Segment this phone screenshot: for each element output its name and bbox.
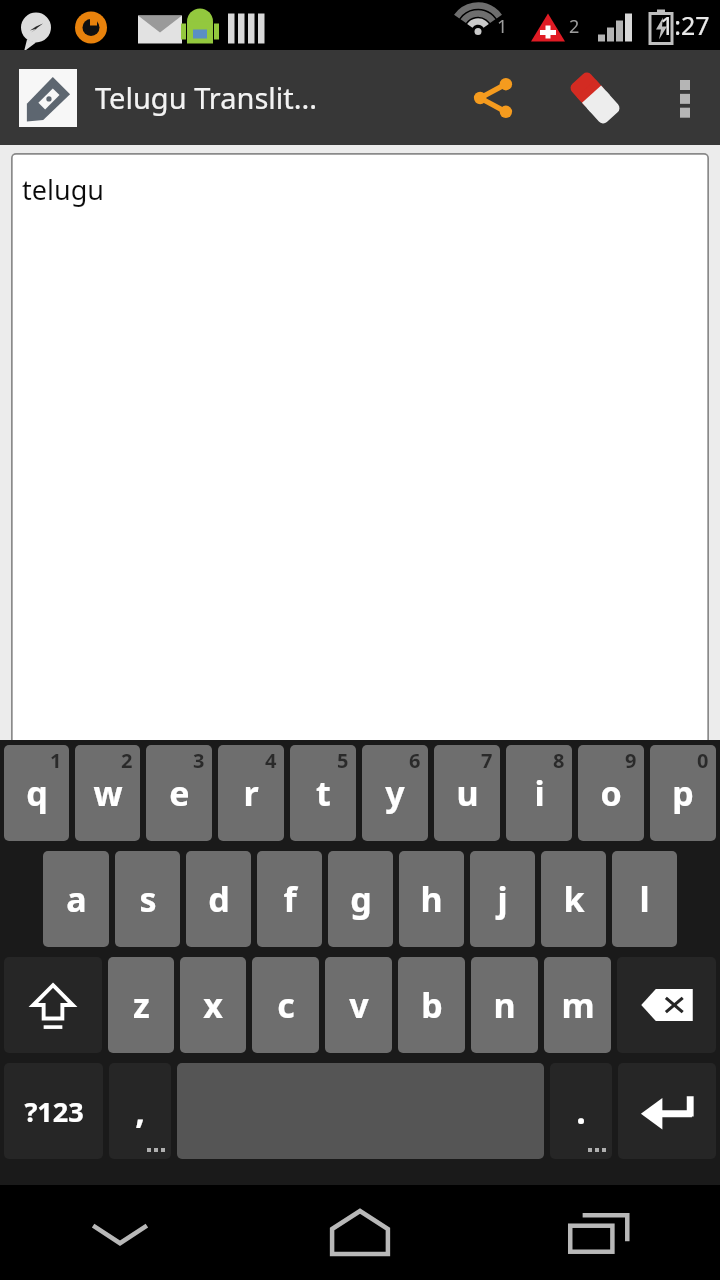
button[interactable]: ?123 [4, 1063, 103, 1159]
staticText: r [243, 770, 259, 816]
button[interactable]: t [290, 745, 356, 841]
button[interactable]: u [434, 745, 500, 841]
button[interactable]: y [362, 745, 428, 841]
button[interactable]: c [252, 957, 319, 1053]
staticText: 1 [497, 14, 508, 39]
button[interactable]: a [43, 851, 109, 947]
staticText: 1 [50, 747, 62, 774]
staticText: , [135, 1088, 145, 1134]
button[interactable]: f [257, 851, 322, 947]
staticText: v [349, 982, 369, 1028]
staticText: f [283, 876, 297, 922]
button[interactable]: q [4, 745, 69, 841]
staticText: x [203, 982, 223, 1028]
staticText: y [385, 770, 405, 816]
button[interactable]: r [218, 745, 284, 841]
staticText: h [420, 876, 443, 922]
staticText: 3 [193, 747, 205, 774]
button[interactable]: telugu [11, 153, 709, 740]
button[interactable]: Backspace [617, 957, 716, 1053]
staticText: b [421, 982, 443, 1028]
staticText: 5 [337, 747, 349, 774]
staticText: g [350, 876, 372, 922]
button[interactable]: h [399, 851, 464, 947]
button[interactable]: k [541, 851, 606, 947]
button[interactable]: Enter [618, 1063, 716, 1159]
button[interactable]: Clear [540, 50, 650, 145]
button[interactable]: j [470, 851, 535, 947]
button[interactable]: i [506, 745, 572, 841]
staticText: u [456, 770, 479, 816]
staticText: 2 [569, 14, 580, 39]
staticText: m [561, 982, 595, 1028]
staticText: 2 [121, 747, 133, 774]
staticText: 4 [265, 747, 277, 774]
button[interactable]: Home [240, 1185, 480, 1280]
button[interactable]: Shift [4, 957, 102, 1053]
button[interactable]: o [578, 745, 644, 841]
button[interactable]: d [186, 851, 251, 947]
button[interactable]: . [550, 1063, 612, 1159]
staticText: . [576, 1088, 586, 1134]
button[interactable]: v [325, 957, 392, 1053]
staticText: l [639, 876, 650, 922]
button[interactable]: Share [445, 50, 540, 145]
button[interactable]: x [180, 957, 246, 1053]
staticText: w [93, 770, 123, 816]
button[interactable]: Hide keyboard [0, 1185, 240, 1280]
staticText: a [66, 876, 87, 922]
staticText: n [493, 982, 516, 1028]
staticText: d [208, 876, 230, 922]
staticText: i [534, 770, 545, 816]
button[interactable]: z [108, 957, 174, 1053]
staticText: j [497, 876, 508, 922]
button[interactable]: App icon [19, 69, 77, 127]
staticText: 7 [481, 747, 493, 774]
staticText: ?123 [24, 1093, 84, 1130]
staticText: q [26, 770, 48, 816]
staticText: e [169, 770, 190, 816]
staticText: 9 [625, 747, 637, 774]
staticText: 8 [553, 747, 565, 774]
staticText: k [563, 876, 585, 922]
button[interactable]: s [115, 851, 180, 947]
button[interactable]: b [398, 957, 465, 1053]
button[interactable]: m [544, 957, 611, 1053]
staticText: p [672, 770, 694, 816]
button[interactable]: , [109, 1063, 171, 1159]
staticText: 0 [697, 747, 709, 774]
button[interactable]: Recent apps [480, 1185, 720, 1280]
staticText: s [139, 876, 157, 922]
button[interactable]: n [471, 957, 538, 1053]
staticText: telugu [22, 171, 104, 208]
button[interactable]: More options [650, 50, 720, 145]
button[interactable]: g [328, 851, 393, 947]
button[interactable]: w [75, 745, 140, 841]
staticText: z [133, 982, 150, 1028]
staticText: o [600, 770, 622, 816]
staticText: 1:27 [660, 8, 710, 42]
staticText: t [316, 770, 331, 816]
staticText: c [277, 982, 295, 1028]
button[interactable]: l [612, 851, 677, 947]
staticText: Telugu Translit... [95, 78, 445, 117]
button[interactable]: p [650, 745, 716, 841]
staticText: 6 [409, 747, 421, 774]
button[interactable]: e [146, 745, 212, 841]
